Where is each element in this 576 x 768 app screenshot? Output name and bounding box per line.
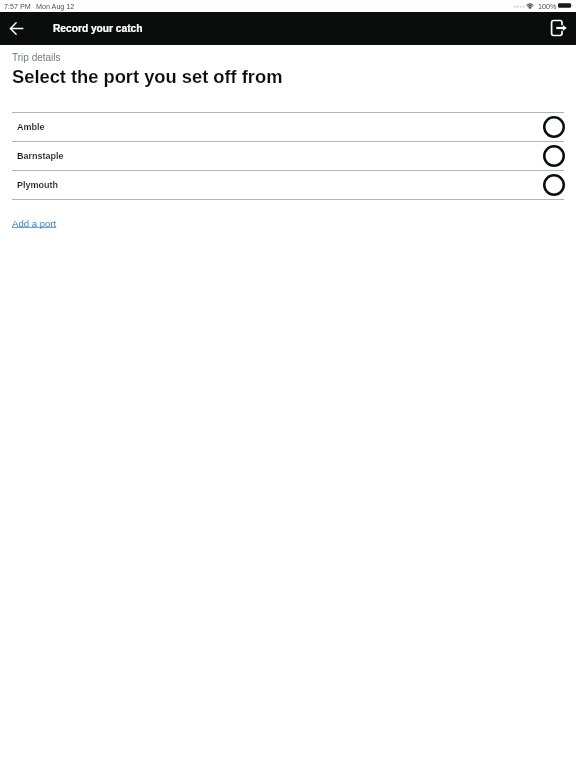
staticText: Barnstaple bbox=[17, 151, 64, 161]
staticText: Trip details bbox=[12, 52, 61, 63]
button[interactable]: Plymouth bbox=[12, 171, 564, 199]
staticText: Mon Aug 12 bbox=[36, 2, 75, 10]
button[interactable]: Sign out bbox=[542, 12, 576, 45]
staticText: 7:57 PM bbox=[4, 2, 31, 10]
staticText: Select the port you set off from bbox=[12, 66, 283, 86]
staticText: Plymouth bbox=[17, 180, 59, 190]
staticText: Record your catch bbox=[53, 23, 143, 34]
button[interactable]: Barnstaple bbox=[12, 142, 564, 170]
staticText: Add a port bbox=[12, 218, 57, 229]
button[interactable]: Add a port bbox=[12, 218, 57, 229]
button[interactable]: Back bbox=[0, 12, 34, 45]
button[interactable]: Amble bbox=[12, 113, 564, 141]
staticText: Amble bbox=[17, 122, 45, 132]
staticText: 100% bbox=[538, 2, 557, 10]
